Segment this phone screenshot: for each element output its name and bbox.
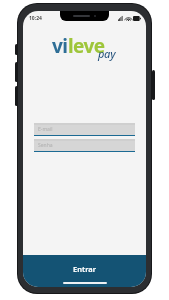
staticText: 10:24	[29, 15, 42, 22]
button[interactable]: Senha	[34, 139, 135, 152]
button[interactable]: Entrar	[23, 255, 146, 287]
staticText: vi	[52, 33, 68, 59]
staticText: pay	[98, 46, 116, 61]
staticText: E-mail	[38, 126, 53, 133]
staticText: Entrar	[73, 264, 96, 274]
staticText: Senha	[38, 142, 53, 149]
staticText: leve	[68, 33, 105, 59]
button[interactable]: E-mail	[34, 123, 135, 136]
